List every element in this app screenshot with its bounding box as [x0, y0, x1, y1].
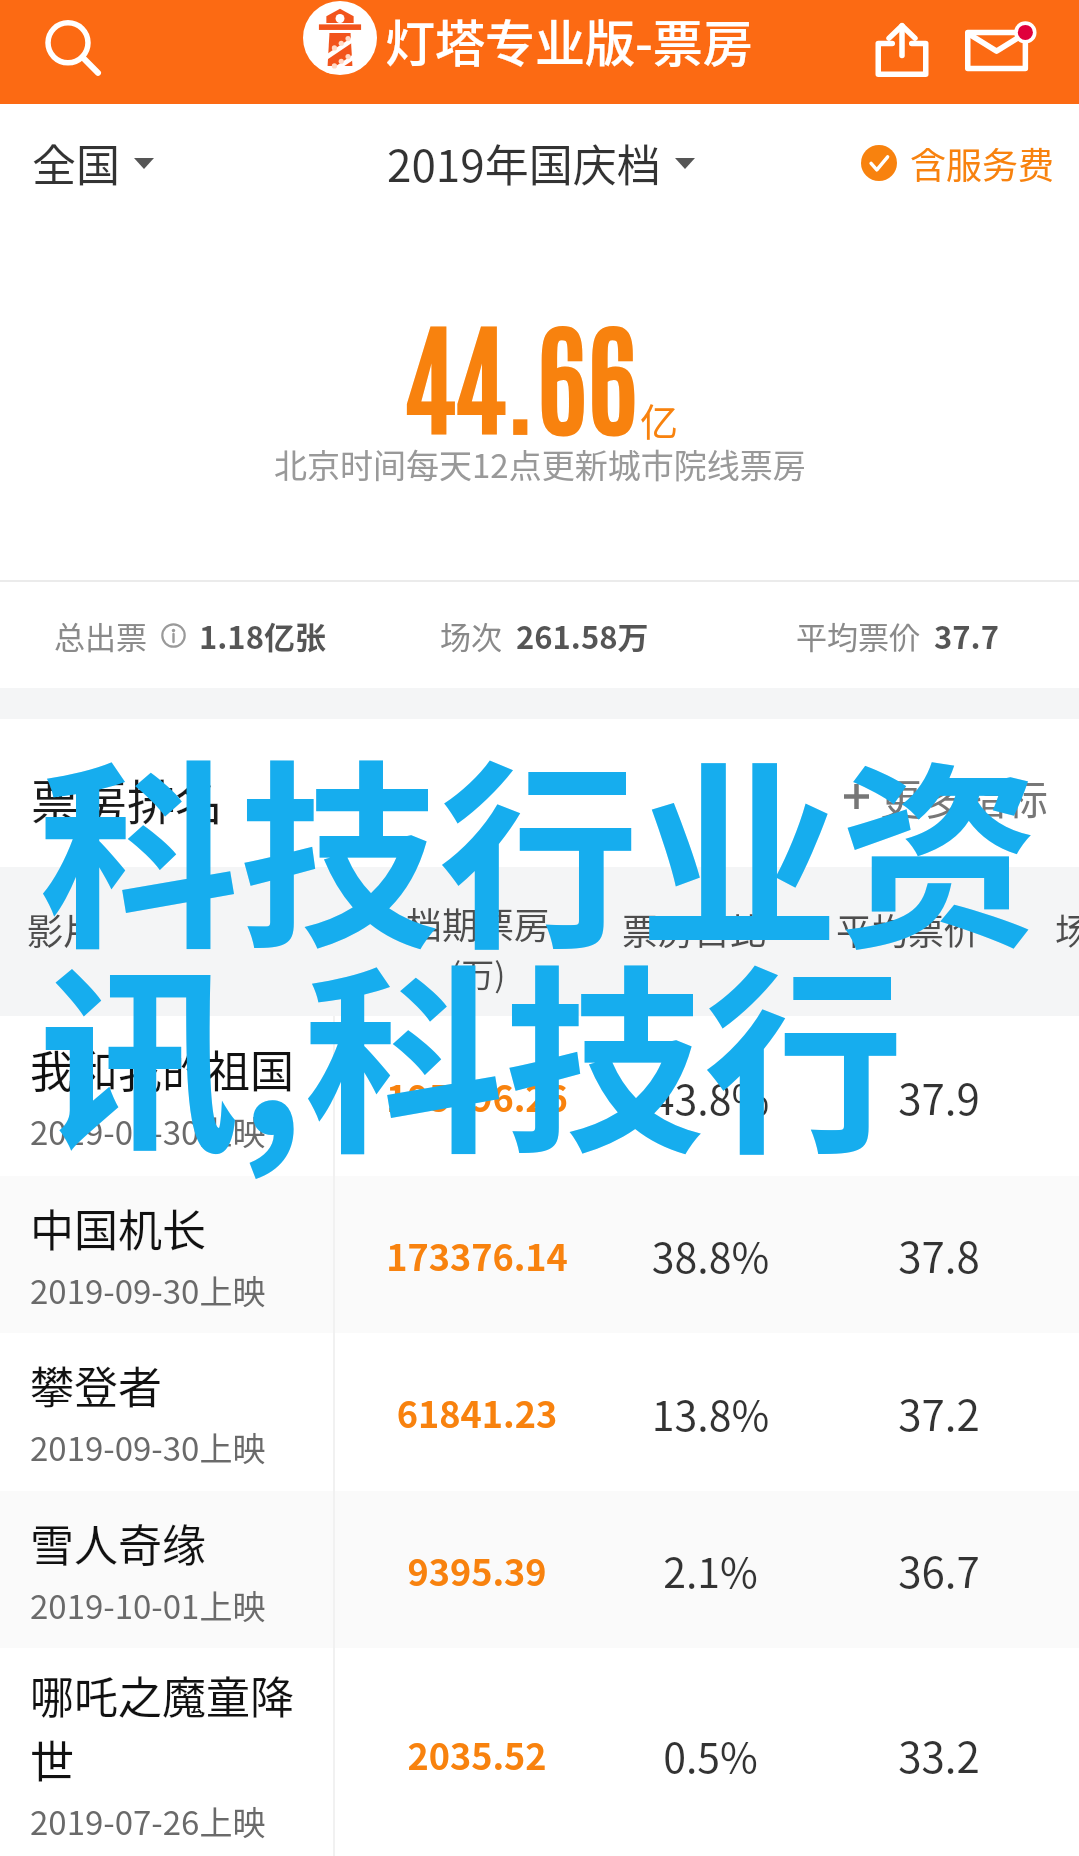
staticText: 36.7	[839, 1539, 1039, 1600]
staticText: 我和我的祖国	[30, 1037, 308, 1101]
staticText: 全国	[32, 131, 120, 195]
staticText: 13.8%	[603, 1383, 818, 1442]
staticText: (万)	[450, 949, 506, 997]
staticText: 含服务费	[910, 137, 1055, 189]
staticText: 总出票	[54, 613, 147, 658]
staticText: 37.9	[839, 1066, 1039, 1127]
staticText: 档期票房	[406, 897, 551, 949]
button[interactable]: 哪吒之魔童降世	[0, 1648, 1079, 1856]
staticText: 哪吒之魔童降世	[30, 1663, 308, 1791]
button[interactable]: Search	[36, 12, 112, 88]
button[interactable]: 我和我的祖国	[0, 1016, 1079, 1176]
button[interactable]: Share	[862, 10, 942, 90]
staticText: 票房占比	[622, 903, 767, 955]
staticText: 平均票价	[796, 613, 920, 658]
staticText: 38.8%	[603, 1225, 818, 1284]
staticText: 37.7	[934, 613, 999, 658]
button[interactable]: 全国	[32, 131, 154, 195]
staticText: 33.2	[839, 1724, 1039, 1785]
button[interactable]: 攀登者	[0, 1333, 1079, 1491]
staticText: 2.1%	[603, 1540, 818, 1599]
staticText: 37.2	[839, 1382, 1039, 1443]
staticText: 37.8	[839, 1224, 1039, 1285]
staticText: 2019-09-30上映	[30, 1423, 266, 1471]
staticText: 0.5%	[603, 1725, 818, 1784]
staticText: 2035.52	[332, 1728, 622, 1780]
staticText: 讯,科技行	[39, 904, 905, 1194]
button[interactable]: 雪人奇缘	[0, 1491, 1079, 1648]
staticText: 43.8%	[603, 1067, 818, 1126]
button[interactable]: 含服务费	[861, 137, 1055, 189]
staticText: 2019-09-30上映	[30, 1266, 266, 1314]
staticText: 195696.26	[332, 1070, 622, 1122]
staticText: 亿	[640, 392, 679, 447]
staticText: 场次	[1055, 903, 1079, 955]
staticText: 北京时间每天12点更新城市院线票房	[274, 440, 806, 488]
staticText: 2019-10-01上映	[30, 1581, 266, 1629]
staticText: 2019年国庆档	[387, 131, 661, 195]
staticText: 票房排名	[31, 764, 224, 834]
staticText: 173376.14	[332, 1229, 622, 1281]
staticText: 中国机长	[30, 1196, 308, 1260]
staticText: 9395.39	[332, 1544, 622, 1596]
button[interactable]: 更多指标	[843, 766, 1049, 827]
staticText: 攀登者	[30, 1353, 308, 1417]
staticText: 1.18亿张	[199, 613, 326, 658]
staticText: 科技行业资	[39, 699, 1040, 989]
button[interactable]: 中国机长	[0, 1176, 1079, 1333]
staticText: 影片	[27, 903, 100, 955]
staticText: 雪人奇缘	[30, 1511, 308, 1575]
button[interactable]: 2019年国庆档	[387, 131, 695, 195]
staticText: 2019-09-30上映	[30, 1107, 266, 1155]
staticText: 261.58万	[516, 613, 649, 658]
staticText: 44.66	[404, 293, 638, 450]
staticText: 平均票价	[836, 903, 981, 955]
staticText: 更多指标	[880, 766, 1049, 827]
staticText: 61841.23	[332, 1386, 622, 1438]
staticText: 场次	[440, 613, 502, 658]
staticText: 2019-07-26上映	[30, 1797, 266, 1845]
button[interactable]: Messages	[955, 6, 1041, 92]
staticText: 灯塔专业版-票房	[385, 4, 753, 76]
